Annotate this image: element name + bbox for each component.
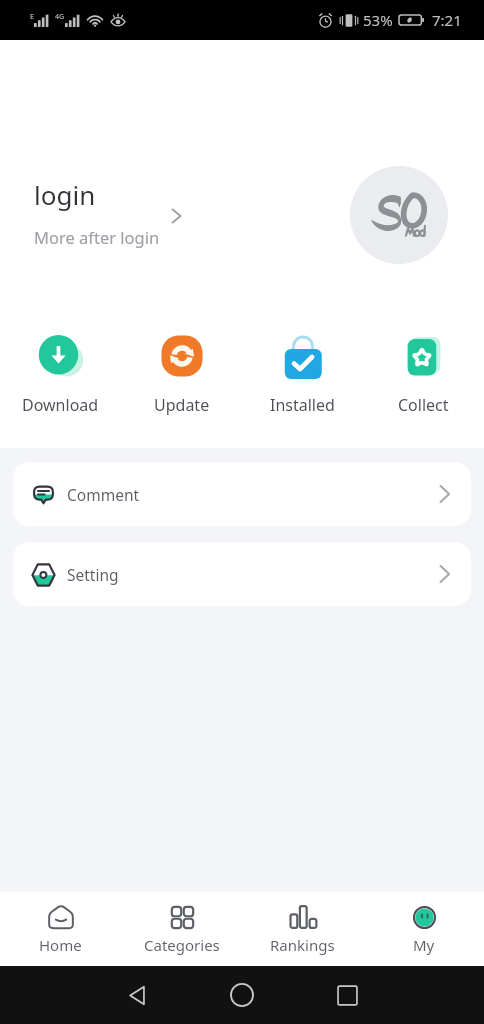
staticText: E — [30, 12, 34, 22]
staticText: Download — [22, 394, 99, 416]
staticText: Update — [154, 394, 210, 416]
button[interactable]: Collect — [363, 328, 484, 418]
button[interactable]: Categories — [121, 897, 242, 962]
button[interactable]: Setting — [13, 542, 471, 606]
staticText: My — [413, 935, 435, 955]
staticText: Home — [39, 935, 82, 955]
staticText: 7:21 — [432, 10, 462, 30]
button[interactable]: Recents — [327, 975, 367, 1015]
staticText: login — [34, 177, 96, 212]
button[interactable]: Rankings — [242, 897, 363, 962]
button[interactable]: Update — [121, 328, 242, 418]
button[interactable]: Back — [117, 975, 157, 1015]
button[interactable]: Installed — [242, 328, 363, 418]
button[interactable]: Home — [0, 897, 121, 962]
staticText: Setting — [67, 564, 119, 585]
staticText: More after login — [34, 226, 160, 248]
staticText: 53% — [363, 10, 393, 30]
button[interactable]: Home — [222, 975, 262, 1015]
button[interactable]: My — [363, 897, 484, 962]
staticText: Installed — [270, 394, 335, 416]
button[interactable]: Profile avatar — [350, 166, 448, 264]
button[interactable]: Comment — [13, 462, 471, 526]
button[interactable]: Download — [0, 328, 121, 418]
staticText: Rankings — [270, 935, 335, 955]
button[interactable]: login — [34, 177, 188, 248]
staticText: Collect — [398, 394, 449, 416]
staticText: Categories — [144, 935, 220, 955]
staticText: Comment — [67, 484, 140, 505]
staticText: 4G — [55, 12, 65, 22]
